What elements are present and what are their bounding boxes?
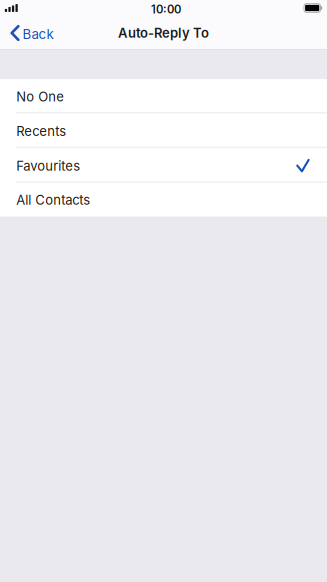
staticText: 10:00 [151,3,181,16]
button[interactable]: Favourites [0,148,327,183]
button[interactable]: Back [0,17,63,47]
button[interactable]: No One [0,79,327,114]
staticText: Favourites [16,158,80,174]
staticText: Back [22,26,53,42]
button[interactable]: All Contacts [0,183,327,216]
staticText: All Contacts [16,192,90,208]
staticText: Recents [16,123,66,139]
staticText: No One [16,89,64,105]
button[interactable]: Recents [0,114,327,148]
staticText: Auto-Reply To [118,25,209,41]
